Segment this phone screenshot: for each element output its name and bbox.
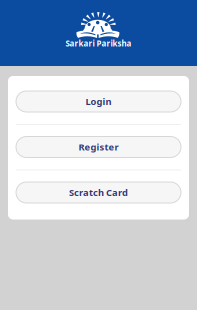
button[interactable]: Scratch Card [16, 182, 181, 203]
button[interactable]: Login [16, 91, 181, 112]
staticText: Sarkari Pariksha [65, 38, 131, 49]
staticText: Scratch Card [69, 186, 128, 199]
button[interactable]: Register [16, 136, 181, 157]
staticText: Login [85, 95, 111, 108]
staticText: Register [78, 141, 118, 153]
